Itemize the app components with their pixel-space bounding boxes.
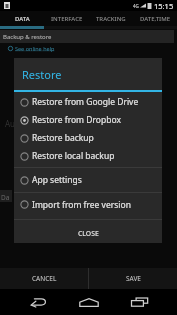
staticText: CANCEL (32, 274, 57, 283)
staticText: Restore from Dropbox (32, 114, 121, 126)
button[interactable]: See online help (0, 43, 177, 54)
button[interactable]: App settings (14, 168, 162, 192)
staticText: 4G (133, 3, 139, 9)
button[interactable]: CLOSE (14, 220, 162, 243)
staticText: TRACKING (96, 15, 126, 23)
button[interactable]: Restore from Google Drive (14, 93, 162, 111)
staticText: See online help (15, 45, 55, 52)
staticText: Backup & restore (3, 33, 52, 41)
staticText: CLOSE (78, 229, 99, 238)
button[interactable]: SAVE (89, 268, 177, 289)
button[interactable]: Restore backup (14, 129, 162, 147)
staticText: 15:15 (154, 1, 174, 11)
staticText: Restore local backup (32, 150, 115, 162)
staticText: Da (1, 193, 10, 202)
button[interactable]: Restore from Dropbox (14, 111, 162, 129)
staticText: Au (5, 118, 16, 129)
staticText: App settings (32, 174, 82, 186)
staticText: Restore backup (32, 132, 94, 144)
button[interactable]: Recents (119, 289, 159, 315)
button[interactable]: Restore local backup (14, 147, 162, 165)
staticText: Restore (22, 67, 62, 82)
button[interactable]: Back (18, 289, 58, 315)
button[interactable]: DATA (0, 11, 45, 26)
staticText: DATE,TIME (140, 15, 171, 23)
button[interactable]: INTERFACE (45, 11, 89, 26)
staticText: Import from free version (32, 199, 131, 211)
staticText: INTERFACE (51, 15, 83, 23)
button[interactable]: TRACKING (89, 11, 133, 26)
staticText: Restore from Google Drive (32, 96, 139, 108)
button[interactable]: CANCEL (0, 268, 88, 289)
staticText: DATA (15, 15, 30, 23)
button[interactable]: Home (69, 289, 109, 315)
button[interactable]: DATE,TIME (133, 11, 177, 26)
staticText: SAVE (126, 274, 141, 283)
button[interactable]: Import from free version (14, 193, 162, 216)
